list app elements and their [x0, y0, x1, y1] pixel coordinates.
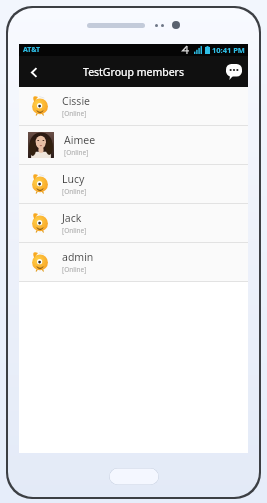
- staticText: [Online]: [62, 265, 87, 274]
- button[interactable]: admin: [19, 243, 248, 282]
- staticText: Cissie: [62, 94, 91, 108]
- staticText: 10:41 PM: [212, 45, 245, 55]
- button[interactable]: Jack: [19, 204, 248, 243]
- staticText: Jack: [62, 211, 82, 225]
- button[interactable]: Chat: [224, 62, 244, 82]
- button[interactable]: Lucy: [19, 165, 248, 204]
- button[interactable]: Back: [19, 57, 49, 87]
- button[interactable]: Cissie: [19, 87, 248, 126]
- staticText: [Online]: [62, 226, 87, 235]
- staticText: TestGroup members: [83, 65, 184, 79]
- staticText: Aimee: [64, 133, 96, 147]
- staticText: [Online]: [62, 187, 87, 196]
- staticText: admin: [62, 250, 94, 264]
- button[interactable]: Aimee: [19, 126, 248, 165]
- staticText: [Online]: [62, 109, 87, 118]
- staticText: [Online]: [64, 148, 89, 157]
- staticText: Lucy: [62, 172, 85, 186]
- staticText: AT&T: [23, 45, 41, 55]
